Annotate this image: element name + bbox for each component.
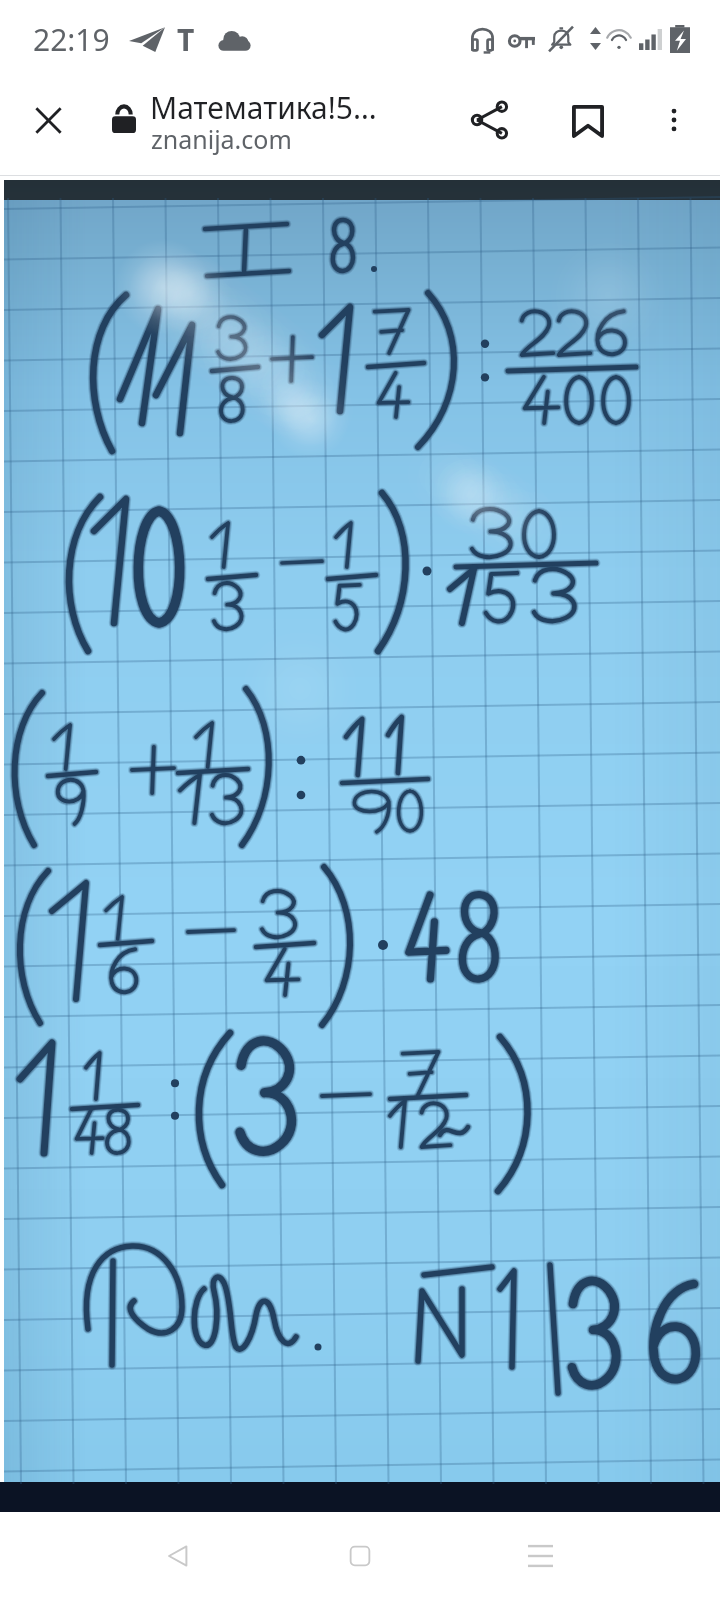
staticText: 22:19 xyxy=(33,19,110,60)
staticText: Математика!5… xyxy=(150,87,377,128)
button[interactable]: Close xyxy=(12,84,84,156)
button[interactable]: Bookmark xyxy=(552,84,624,156)
button[interactable]: More options xyxy=(638,84,710,156)
button[interactable]: Home xyxy=(300,1512,420,1600)
staticText: T xyxy=(177,19,195,60)
button[interactable]: Recent apps xyxy=(480,1512,600,1600)
button[interactable]: Back xyxy=(118,1512,238,1600)
staticText: znanija.com xyxy=(151,122,292,156)
button[interactable]: Share xyxy=(454,84,526,156)
